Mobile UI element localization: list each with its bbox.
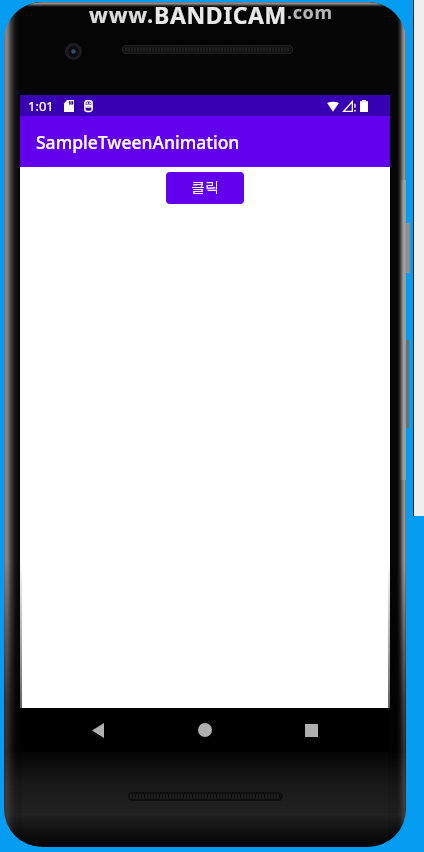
button[interactable]: Back bbox=[76, 708, 120, 752]
staticText: 클릭 bbox=[191, 179, 219, 197]
button[interactable]: Recents bbox=[289, 708, 333, 752]
staticText: www. bbox=[89, 0, 154, 25]
button[interactable]: Home bbox=[183, 708, 227, 752]
staticText: 1:01 bbox=[28, 97, 54, 115]
button[interactable]: 클릭 bbox=[166, 172, 244, 204]
staticText: SampleTweenAnimation bbox=[36, 130, 240, 154]
staticText: .com bbox=[287, 0, 333, 25]
staticText: BANDICAM bbox=[154, 0, 287, 25]
